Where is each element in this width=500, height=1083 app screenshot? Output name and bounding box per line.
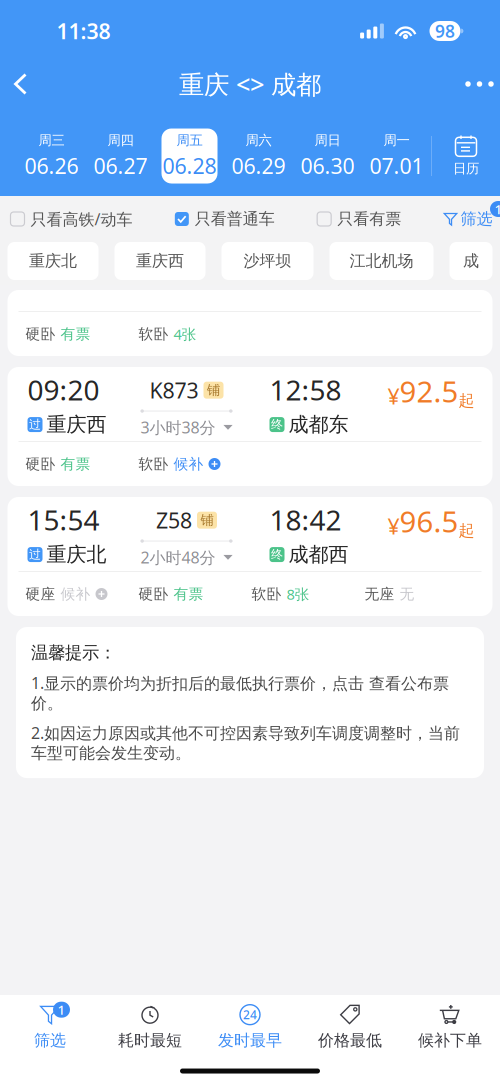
staticText: K873 xyxy=(149,376,198,404)
staticText: 重庆北 xyxy=(46,542,106,567)
staticText: 硬卧 xyxy=(25,325,55,343)
staticText: 24 xyxy=(243,1007,257,1023)
staticText: 11:38 xyxy=(56,17,110,45)
staticText: 无座 xyxy=(364,585,394,603)
staticText: 过 xyxy=(29,547,41,562)
staticText: 温馨提示： xyxy=(31,642,116,663)
button[interactable]: 重庆西 xyxy=(114,242,205,280)
staticText: ¥ xyxy=(387,512,399,540)
staticText: 98 xyxy=(435,19,455,42)
button[interactable]: More options xyxy=(454,62,500,106)
staticText: 96.5 xyxy=(399,501,458,540)
staticText: 09:20 xyxy=(27,371,99,408)
staticText: 周六 xyxy=(245,132,271,148)
staticText: 有票 xyxy=(173,585,203,603)
staticText: 周三 xyxy=(38,132,64,148)
staticText: 1.显示的票价均为折扣后的最低执行票价，点击 查看公布票价。 xyxy=(31,672,449,713)
button[interactable]: 周五 xyxy=(155,128,224,184)
staticText: 只看有票 xyxy=(337,209,401,229)
staticText: 硬座 xyxy=(25,585,55,603)
button[interactable]: 重庆北 xyxy=(7,242,98,280)
staticText: 江北机场 xyxy=(349,251,413,271)
button[interactable]: Back xyxy=(0,62,45,106)
staticText: 周四 xyxy=(107,132,133,148)
staticText: ¥ xyxy=(387,382,399,410)
staticText: 成都东 xyxy=(288,412,348,437)
staticText: 周日 xyxy=(314,132,340,148)
staticText: 只看高铁/动车 xyxy=(30,208,132,230)
button[interactable]: 只看高铁/动车 xyxy=(10,202,132,236)
button[interactable]: 只看普通车 xyxy=(175,202,275,236)
button[interactable]: 周六 xyxy=(224,128,293,184)
staticText: 06.28 xyxy=(162,151,216,180)
staticText: 只看普通车 xyxy=(195,209,275,229)
staticText: 有票 xyxy=(60,455,90,473)
staticText: 重庆西 xyxy=(46,412,106,437)
staticText: 周五 xyxy=(176,132,202,148)
staticText: 06.30 xyxy=(300,151,354,180)
staticText: 软卧 xyxy=(138,455,168,473)
staticText: 92.5 xyxy=(399,371,458,410)
button[interactable]: 周一 xyxy=(362,128,431,184)
staticText: 1 xyxy=(57,1001,65,1018)
staticText: 软卧 xyxy=(138,325,168,343)
staticText: 铺 xyxy=(207,382,220,398)
staticText: 有票 xyxy=(60,325,90,343)
button[interactable]: 周三 xyxy=(17,128,86,184)
button[interactable]: 江北机场 xyxy=(329,242,433,280)
button[interactable]: 耗时最短 xyxy=(100,1000,200,1054)
staticText: 起 xyxy=(458,391,474,410)
staticText: 2.如因运力原因或其他不可控因素导致列车调度调整时，当前车型可能会发生变动。 xyxy=(31,722,460,763)
staticText: 日历 xyxy=(453,160,479,177)
button[interactable]: 24 xyxy=(200,1000,300,1054)
staticText: 3小时38分 xyxy=(140,417,215,438)
button[interactable]: 价格最低 xyxy=(300,1000,400,1054)
staticText: 06.26 xyxy=(24,151,78,180)
staticText: 候补下单 xyxy=(418,1031,482,1050)
staticText: 硬卧 xyxy=(138,585,168,603)
staticText: 候补 xyxy=(60,585,90,603)
button[interactable]: 沙坪坝 xyxy=(221,242,313,280)
staticText: 15:54 xyxy=(27,501,99,538)
staticText: 价格最低 xyxy=(318,1031,382,1050)
button[interactable]: 只看有票 xyxy=(317,202,401,236)
staticText: 候补 xyxy=(173,455,203,473)
staticText: 07.01 xyxy=(369,151,423,180)
staticText: 筛选 xyxy=(34,1031,66,1050)
staticText: 沙坪坝 xyxy=(243,251,291,271)
staticText: 发时最早 xyxy=(218,1031,282,1050)
button[interactable]: 候补下单 xyxy=(400,1000,500,1054)
staticText: 铺 xyxy=(200,512,213,528)
staticText: 成 xyxy=(463,251,479,271)
staticText: 硬卧 xyxy=(25,455,55,473)
staticText: 软卧 xyxy=(251,585,281,603)
button[interactable]: 日历 xyxy=(432,128,500,184)
staticText: 筛选 xyxy=(460,209,492,229)
staticText: 18:42 xyxy=(269,501,341,538)
staticText: 周一 xyxy=(383,132,409,148)
staticText: Z58 xyxy=(156,506,192,534)
button[interactable]: 筛选 xyxy=(443,202,492,236)
staticText: 终 xyxy=(271,417,283,432)
staticText: 2小时48分 xyxy=(140,547,215,568)
staticText: 起 xyxy=(458,521,474,540)
staticText: 重庆 <> 成都 xyxy=(179,67,321,101)
staticText: 1 xyxy=(494,200,500,218)
staticText: 重庆西 xyxy=(136,251,184,271)
staticText: 06.29 xyxy=(231,151,285,180)
staticText: 4张 xyxy=(173,324,196,344)
staticText: 12:58 xyxy=(269,371,341,408)
staticText: 终 xyxy=(271,547,283,562)
staticText: 耗时最短 xyxy=(118,1031,182,1050)
staticText: 06.27 xyxy=(93,151,147,180)
staticText: 8张 xyxy=(286,584,309,604)
button[interactable]: 成 xyxy=(449,242,492,280)
staticText: 无 xyxy=(399,585,414,603)
button[interactable]: 周日 xyxy=(293,128,362,184)
staticText: 重庆北 xyxy=(29,251,77,271)
staticText: 过 xyxy=(29,417,41,432)
staticText: 成都西 xyxy=(288,542,348,567)
button[interactable]: 周四 xyxy=(86,128,155,184)
button[interactable]: 1 xyxy=(0,1000,100,1054)
